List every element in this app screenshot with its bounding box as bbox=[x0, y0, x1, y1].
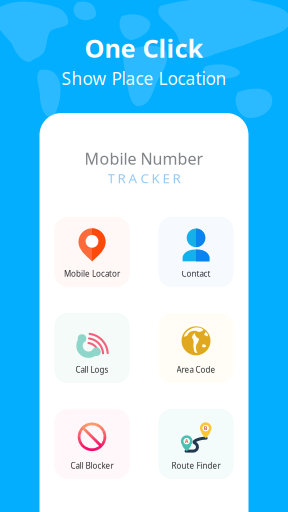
staticText: Mobile Number bbox=[84, 148, 203, 169]
button[interactable]: Mobile Locator bbox=[54, 217, 129, 287]
button[interactable]: A bbox=[158, 409, 233, 479]
staticText: Route Finder bbox=[171, 460, 220, 471]
staticText: Mobile Locator bbox=[64, 268, 120, 279]
staticText: B bbox=[204, 425, 208, 432]
button[interactable]: Call Logs bbox=[54, 313, 129, 383]
staticText: Call Blocker bbox=[70, 460, 113, 471]
staticText: T R A C K E R bbox=[107, 169, 180, 187]
staticText: A bbox=[185, 438, 189, 445]
staticText: One Click bbox=[84, 31, 203, 65]
button[interactable]: Area Code bbox=[158, 313, 233, 383]
staticText: Contact bbox=[181, 268, 210, 279]
staticText: Area Code bbox=[176, 364, 215, 375]
staticText: Show Place Location bbox=[61, 67, 226, 90]
button[interactable]: Contact bbox=[158, 217, 233, 287]
staticText: Call Logs bbox=[75, 364, 108, 375]
button[interactable]: Call Blocker bbox=[54, 409, 129, 479]
